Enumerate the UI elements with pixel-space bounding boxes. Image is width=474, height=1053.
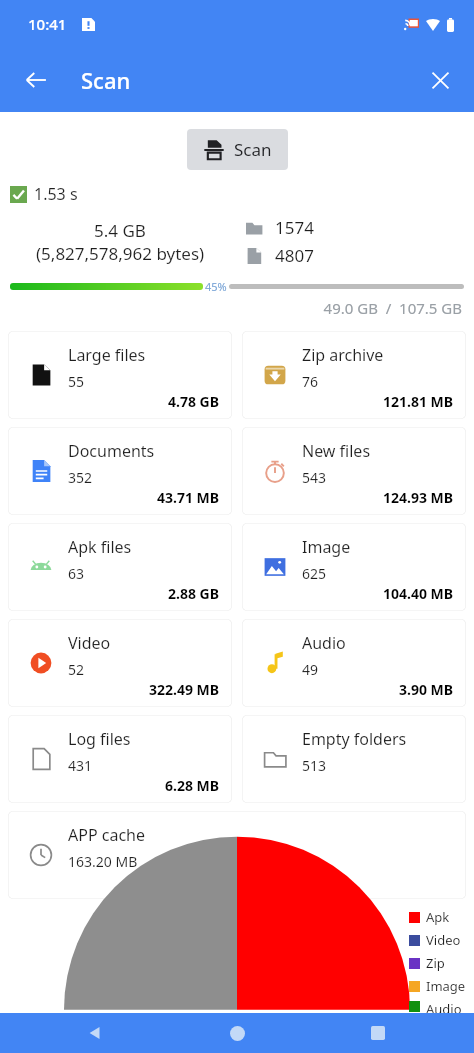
staticText: 431: [68, 756, 93, 775]
staticText: Image: [302, 536, 351, 558]
staticText: 625: [302, 564, 327, 583]
staticText: Documents: [68, 440, 155, 462]
staticText: 6.28 MB: [165, 776, 220, 795]
button[interactable]: Log files: [8, 715, 232, 803]
staticText: 124.93 MB: [383, 488, 454, 507]
staticText: Video: [68, 632, 111, 654]
staticText: 5.4 GB: [94, 219, 146, 242]
staticText: Video: [426, 931, 461, 949]
staticText: 104.40 MB: [383, 584, 454, 603]
staticText: 352: [68, 468, 93, 487]
staticText: 55: [68, 372, 85, 391]
button[interactable]: APP cache: [8, 811, 466, 899]
staticText: 1574: [275, 216, 314, 239]
staticText: (5,827,578,962 bytes): [36, 242, 205, 265]
button[interactable]: Audio: [242, 619, 466, 707]
staticText: 4807: [275, 244, 314, 267]
staticText: 4.78 GB: [168, 392, 220, 411]
staticText: Audio: [426, 1000, 462, 1013]
staticText: 3.90 MB: [399, 680, 454, 699]
staticText: 76: [302, 372, 319, 391]
staticText: Scan: [234, 138, 272, 161]
staticText: Large files: [68, 344, 146, 366]
staticText: 45%: [205, 279, 227, 294]
staticText: 43.71 MB: [157, 488, 220, 507]
button[interactable]: Apk files: [8, 523, 232, 611]
staticText: Image: [426, 977, 466, 995]
staticText: New files: [302, 440, 371, 462]
button[interactable]: Back: [14, 58, 58, 102]
staticText: 2.88 GB: [168, 584, 220, 603]
staticText: 121.81 MB: [383, 392, 454, 411]
staticText: 543: [302, 468, 327, 487]
staticText: 1.53 s: [34, 183, 78, 205]
button[interactable]: Large files: [8, 331, 232, 419]
staticText: Zip archive: [302, 344, 384, 366]
staticText: 10:41: [28, 14, 67, 34]
button[interactable]: Empty folders: [242, 715, 466, 803]
staticText: 49.0 GB / 107.5 GB: [0, 298, 462, 318]
staticText: Empty folders: [302, 728, 407, 750]
button[interactable]: New files: [242, 427, 466, 515]
staticText: 513: [302, 756, 327, 775]
button[interactable]: Documents: [8, 427, 232, 515]
staticText: 322.49 MB: [149, 680, 220, 699]
button[interactable]: Video: [8, 619, 232, 707]
staticText: Scan: [81, 65, 131, 95]
button[interactable]: Zip archive: [242, 331, 466, 419]
staticText: Log files: [68, 728, 131, 750]
button[interactable]: Close: [418, 58, 462, 102]
staticText: Apk: [426, 908, 450, 926]
button[interactable]: Back: [78, 1015, 114, 1051]
staticText: 63: [68, 564, 85, 583]
staticText: APP cache: [68, 824, 145, 846]
button[interactable]: Home: [219, 1015, 255, 1051]
button[interactable]: Image: [242, 523, 466, 611]
staticText: Zip: [426, 954, 445, 972]
staticText: Audio: [302, 632, 346, 654]
button[interactable]: Recents: [360, 1015, 396, 1051]
staticText: 52: [68, 660, 85, 679]
staticText: 163.20 MB: [68, 852, 138, 871]
staticText: Apk files: [68, 536, 132, 558]
button[interactable]: Scan: [187, 129, 288, 170]
staticText: 49: [302, 660, 319, 679]
